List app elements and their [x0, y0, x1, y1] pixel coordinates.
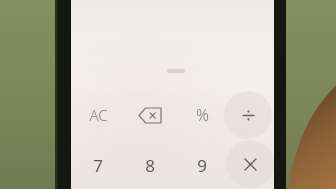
staticText: 8	[145, 154, 155, 177]
staticText: %	[196, 104, 209, 126]
button[interactable]: Multiply	[226, 140, 274, 188]
button[interactable]: Backspace	[126, 96, 174, 134]
staticText: 9	[197, 154, 207, 177]
button[interactable]: AC	[74, 96, 122, 134]
button[interactable]: Divide	[224, 91, 272, 139]
button[interactable]: 8	[126, 145, 174, 185]
staticText: 7	[93, 154, 103, 177]
button[interactable]: %	[178, 96, 226, 134]
button[interactable]: 7	[74, 145, 122, 185]
button[interactable]: 9	[178, 145, 226, 185]
staticText: AC	[89, 105, 108, 125]
